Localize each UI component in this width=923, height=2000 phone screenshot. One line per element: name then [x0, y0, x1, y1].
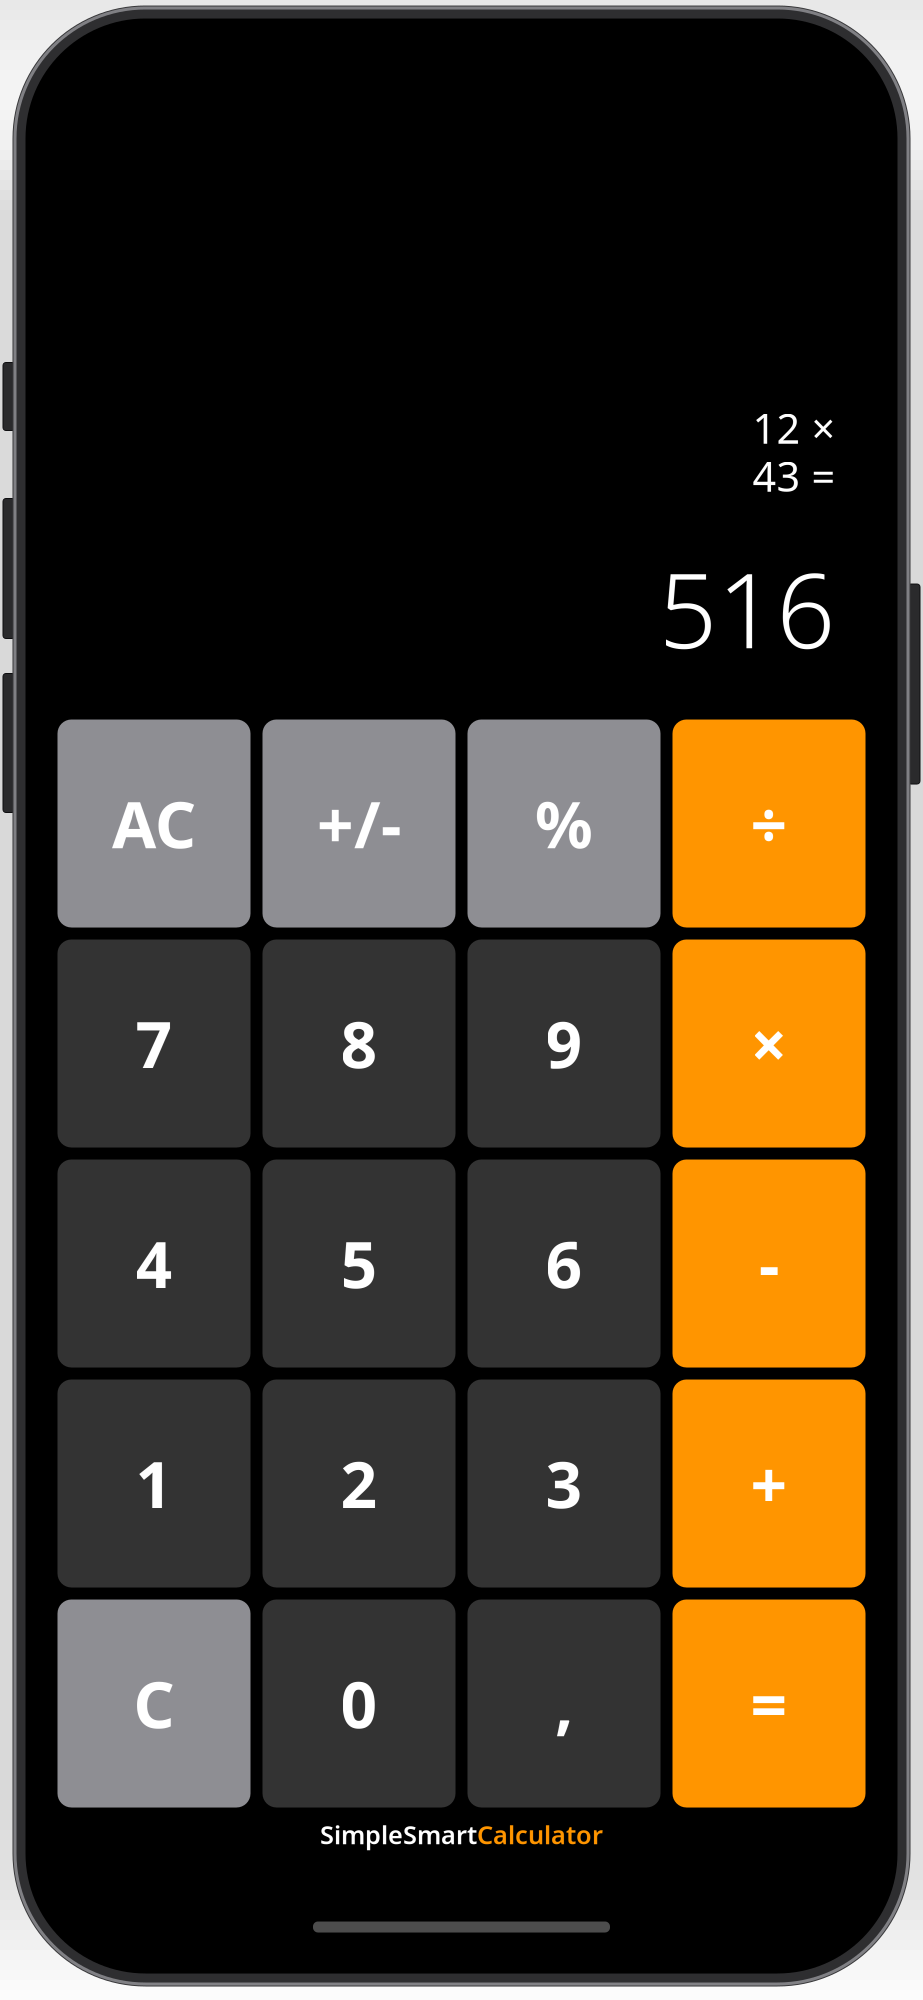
staticText: 0: [340, 1661, 377, 1746]
button[interactable]: Divide: [672, 719, 865, 927]
button[interactable]: 9: [467, 939, 660, 1147]
staticText: 7: [135, 1001, 172, 1086]
button[interactable]: All clear: [57, 719, 250, 927]
button[interactable]: Decimal separator: [467, 1599, 660, 1807]
staticText: 5: [340, 1221, 377, 1306]
staticText: +/-: [317, 781, 401, 866]
button[interactable]: 4: [57, 1159, 250, 1367]
staticText: 6: [545, 1221, 582, 1306]
button[interactable]: Multiply: [672, 939, 865, 1147]
staticText: 1: [135, 1441, 172, 1526]
staticText: 2: [340, 1441, 377, 1526]
button[interactable]: 3: [467, 1379, 660, 1587]
button[interactable]: 0: [262, 1599, 455, 1807]
button[interactable]: 2: [262, 1379, 455, 1587]
button[interactable]: Clear: [57, 1599, 250, 1807]
staticText: SimpleSmart: [320, 1817, 477, 1851]
staticText: -: [759, 1221, 779, 1306]
staticText: 3: [545, 1441, 582, 1526]
staticText: 8: [340, 1001, 377, 1086]
staticText: ÷: [750, 781, 787, 866]
button[interactable]: Plus minus: [262, 719, 455, 927]
button[interactable]: Equals: [672, 1599, 865, 1807]
staticText: Calculator: [477, 1817, 603, 1851]
staticText: C: [133, 1661, 174, 1746]
staticText: 9: [545, 1001, 582, 1086]
staticText: 43 =: [752, 448, 835, 503]
button[interactable]: 1: [57, 1379, 250, 1587]
staticText: 516: [658, 540, 835, 676]
staticText: 12 ×: [752, 400, 835, 455]
staticText: AC: [112, 781, 196, 866]
staticText: ×: [750, 1001, 787, 1086]
staticText: =: [750, 1661, 787, 1746]
button[interactable]: 7: [57, 939, 250, 1147]
staticText: ,: [555, 1661, 573, 1746]
button[interactable]: 5: [262, 1159, 455, 1367]
button[interactable]: 6: [467, 1159, 660, 1367]
button[interactable]: Minus: [672, 1159, 865, 1367]
button[interactable]: Percent: [467, 719, 660, 927]
staticText: 4: [135, 1221, 172, 1306]
staticText: +: [750, 1441, 787, 1526]
button[interactable]: Plus: [672, 1379, 865, 1587]
button[interactable]: 8: [262, 939, 455, 1147]
staticText: %: [535, 781, 593, 866]
